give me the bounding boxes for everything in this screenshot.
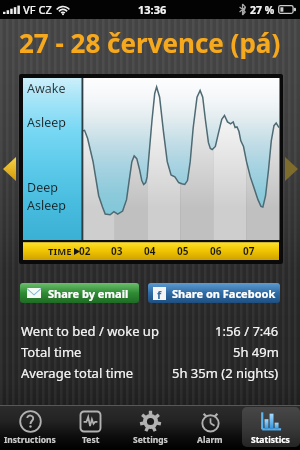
staticText: Went to bed / woke up [21, 322, 159, 340]
staticText: 5h 35m (2 nights) [172, 364, 279, 382]
staticText: Asleep [27, 114, 66, 131]
button[interactable]: Test [60, 405, 120, 450]
staticText: 05 [177, 244, 189, 258]
staticText: 02 [79, 244, 91, 258]
staticText: Share by email [48, 286, 129, 301]
staticText: 27 - 28 července (pá) [19, 25, 281, 60]
staticText: Instructions [4, 434, 56, 446]
staticText: Settings [133, 434, 168, 446]
button[interactable]: f [148, 283, 280, 303]
staticText: f [157, 287, 162, 300]
button[interactable]: Statistics [240, 405, 300, 450]
button[interactable]: Next night [283, 74, 300, 264]
staticText: TIME [48, 245, 72, 258]
staticText: Statistics [251, 434, 290, 446]
button[interactable]: Instructions [0, 405, 60, 450]
button[interactable]: Share by email [20, 283, 139, 303]
staticText: 06 [210, 244, 222, 258]
button[interactable]: Alarm [180, 405, 240, 450]
staticText: 04 [144, 244, 156, 258]
staticText: Test [82, 434, 100, 446]
staticText: VF CZ [23, 2, 52, 17]
button[interactable]: Settings [120, 405, 180, 450]
staticText: Awake [27, 80, 66, 97]
staticText: Alarm [197, 434, 223, 446]
staticText: 27 % [250, 3, 275, 17]
staticText: Asleep [27, 197, 66, 214]
staticText: Deep [27, 179, 58, 196]
button[interactable]: Previous night [0, 74, 19, 264]
staticText: 5h 49m [233, 343, 279, 361]
staticText: Share on Facebook [172, 286, 276, 301]
staticText: Total time [21, 343, 82, 361]
staticText: 13:36 [138, 2, 167, 17]
staticText: 03 [111, 244, 123, 258]
staticText: 07 [243, 244, 255, 258]
staticText: 1:56 / 7:46 [215, 322, 279, 340]
staticText: Average total time [21, 364, 134, 382]
